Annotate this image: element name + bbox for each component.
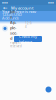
staticText: 123.45 USD <box>2 12 22 17</box>
button[interactable]: Compose <box>45 86 51 92</box>
staticText: 12:04 <box>25 21 32 28</box>
staticText: My account <box>11 5 34 11</box>
button[interactable]: John Appleseed <box>0 24 56 33</box>
button[interactable]: Back <box>2 5 8 11</box>
staticText: Add funds <box>2 15 19 20</box>
staticText: ▪▪▪ <box>48 1 54 4</box>
staticText: Your balance is now <box>2 9 36 14</box>
staticText: ← <box>3 5 7 11</box>
button[interactable]: Check my balance <box>14 36 42 42</box>
staticText: John Appleseed <box>10 9 17 41</box>
staticText: Check my balance <box>19 34 37 44</box>
staticText: ▪▪▪ <box>2 1 8 4</box>
staticText: Payment received <box>10 41 22 48</box>
